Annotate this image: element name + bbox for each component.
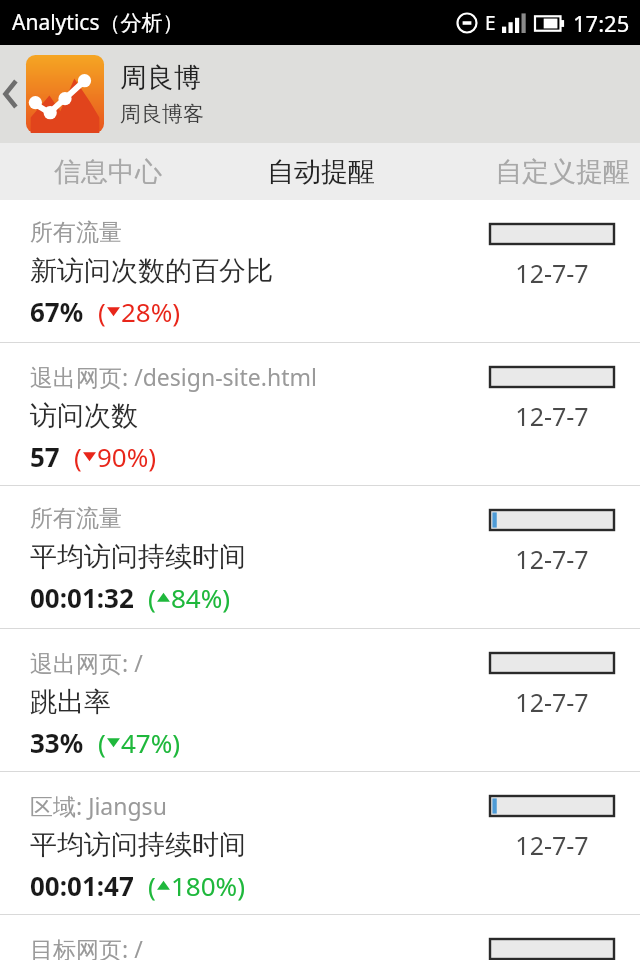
staticText: 自动提醒 [267,155,375,189]
staticText: E [485,10,496,36]
staticText: 67% [30,294,84,329]
staticText: 00:01:47 [30,868,134,903]
button[interactable]: 退出网页: / [0,629,640,771]
staticText: 所有流量 [30,218,122,247]
staticText: 自定义提醒 [495,155,630,189]
staticText: Analytics（分析） [12,8,184,37]
staticText: 退出网页: / [30,647,143,678]
staticText: ( [148,580,156,615]
staticText: 所有流量 [30,504,122,533]
button[interactable]: 退出网页: /design-site.html [0,343,640,485]
staticText: 12-7-7 [515,256,589,290]
staticText: 180%) [171,868,246,903]
staticText: ( [98,294,106,329]
staticText: 12-7-7 [515,828,589,862]
button[interactable]: 所有流量 [0,486,640,628]
staticText: 84%) [171,580,231,615]
staticText: 平均访问持续时间 [30,540,246,574]
staticText: 新访问次数的百分比 [30,254,273,288]
staticText: 信息中心 [54,155,162,189]
staticText: 区域: Jiangsu [30,790,167,821]
staticText: 退出网页: /design-site.html [30,361,317,392]
button[interactable]: Back [0,45,640,143]
staticText: 周良博 [120,61,201,95]
staticText: 57 [30,439,60,474]
staticText: 12-7-7 [515,685,589,719]
staticText: 目标网页: / [30,933,143,960]
button[interactable]: 区域: Jiangsu [0,772,640,914]
staticText: 平均访问持续时间 [30,828,246,862]
button[interactable]: 所有流量 [0,200,640,342]
staticText: 跳出率 [30,685,111,719]
staticText: 访问次数 [30,399,138,433]
staticText: 12-7-7 [515,542,589,576]
button[interactable]: Back [0,45,22,143]
staticText: 12-7-7 [515,399,589,433]
staticText: ( [148,868,156,903]
staticText: ( [98,725,106,760]
staticText: 17:25 [573,8,630,38]
staticText: 33% [30,725,84,760]
staticText: 47%) [121,725,181,760]
button[interactable]: 自动提醒 [213,143,428,200]
staticText: 周良博客 [120,101,204,127]
staticText: 90%) [97,439,157,474]
button[interactable]: 信息中心 [0,143,215,200]
staticText: ( [74,439,82,474]
button[interactable]: 目标网页: / [0,915,640,960]
staticText: 00:01:32 [30,580,134,615]
staticText: 28%) [121,294,181,329]
button[interactable]: 自定义提醒 [455,143,640,200]
